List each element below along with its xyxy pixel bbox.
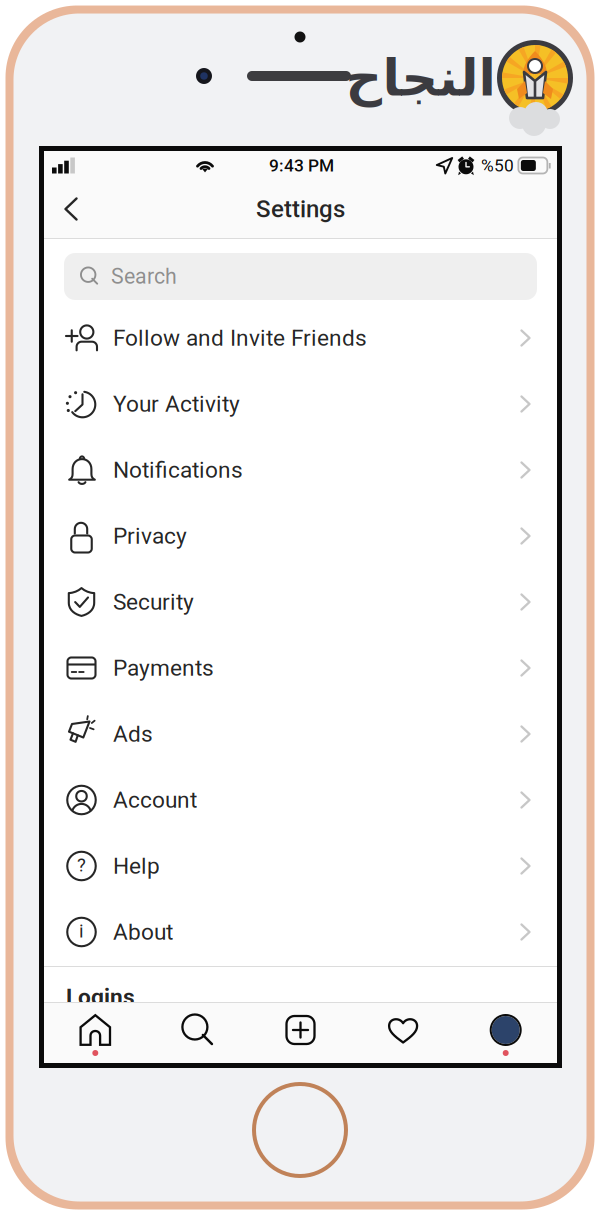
staticText: Account <box>113 787 197 813</box>
staticText: %50 <box>481 156 514 175</box>
button[interactable]: i <box>44 899 557 965</box>
button[interactable]: Your Activity <box>44 371 557 437</box>
button[interactable]: New post <box>249 1003 352 1063</box>
staticText: ? <box>77 854 86 876</box>
button[interactable]: Activity <box>352 1003 454 1063</box>
button[interactable]: Ads <box>44 701 557 767</box>
staticText: Your Activity <box>113 391 240 417</box>
staticText: Ads <box>113 721 153 747</box>
button[interactable]: Back <box>51 183 91 235</box>
button[interactable]: Account <box>44 767 557 833</box>
button[interactable]: Search <box>147 1003 249 1063</box>
staticText: Logins <box>66 984 135 1010</box>
button[interactable]: Follow and Invite Friends <box>44 305 557 371</box>
staticText: About <box>113 919 173 945</box>
staticText: النجاح <box>345 49 495 107</box>
button[interactable]: Home <box>44 1003 147 1063</box>
staticText: Follow and Invite Friends <box>113 325 367 351</box>
button[interactable]: Profile <box>454 1003 557 1063</box>
button[interactable]: Notifications <box>44 437 557 503</box>
staticText: Notifications <box>113 457 243 483</box>
staticText: Settings <box>256 195 345 223</box>
staticText: 9:43 PM <box>269 156 334 175</box>
staticText: Security <box>113 589 194 615</box>
button[interactable]: Search <box>64 253 537 300</box>
staticText: Payments <box>113 655 214 681</box>
staticText: Privacy <box>113 523 187 549</box>
button[interactable]: ? <box>44 833 557 899</box>
staticText: Help <box>113 853 160 879</box>
button[interactable]: Privacy <box>44 503 557 569</box>
button[interactable]: Security <box>44 569 557 635</box>
staticText: Search <box>111 264 177 289</box>
staticText: i <box>79 920 84 942</box>
button[interactable]: Payments <box>44 635 557 701</box>
